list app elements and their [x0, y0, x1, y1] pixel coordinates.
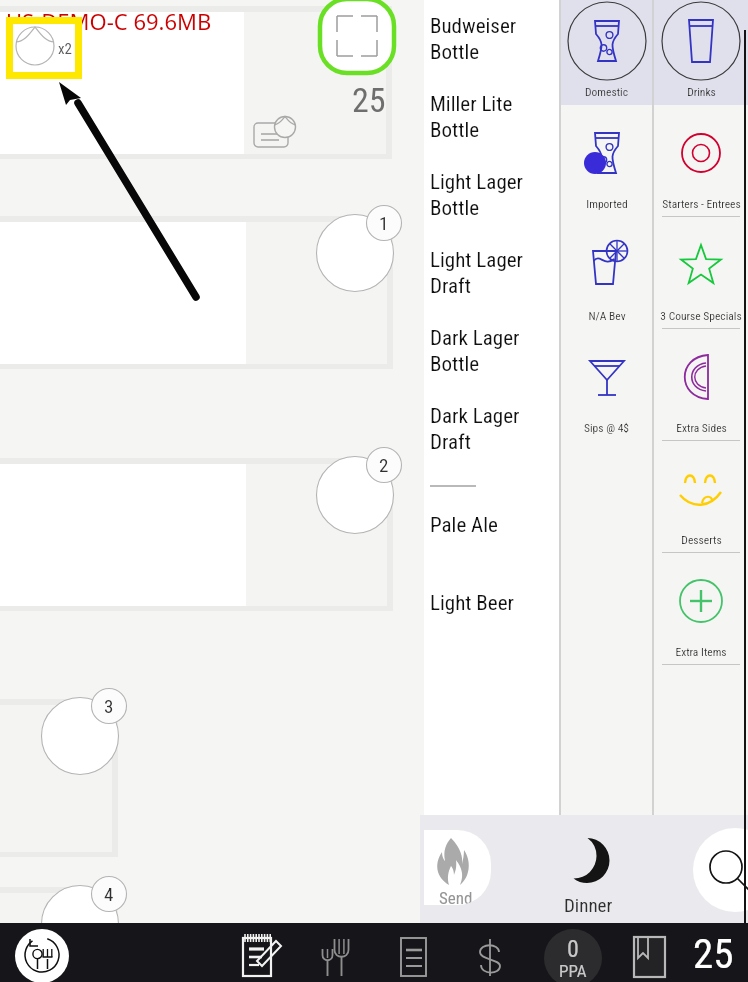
button[interactable]: N/A Bev: [561, 217, 652, 329]
staticText: Imported: [586, 197, 628, 210]
staticText: Miller Lite Bottle: [430, 92, 559, 142]
staticText: Dinner: [564, 894, 613, 916]
staticText: Light Beer: [430, 591, 514, 616]
button[interactable]: 3: [91, 688, 127, 724]
button[interactable]: Payment: [468, 923, 522, 982]
staticText: 2: [379, 454, 389, 476]
button[interactable]: Extra Items: [654, 553, 748, 665]
button[interactable]: Dark Lager Bottle: [424, 326, 559, 404]
staticText: Extra Items: [675, 645, 727, 658]
button[interactable]: 3 Course Specials: [654, 217, 748, 329]
staticText: Budweiser Bottle: [430, 14, 559, 64]
button[interactable]: 25: [680, 923, 740, 982]
button[interactable]: Light Lager Draft: [424, 248, 559, 326]
button[interactable]: Dark Lager Draft: [424, 404, 559, 482]
staticText: 3: [104, 695, 114, 717]
button[interactable]: 2: [366, 447, 402, 483]
button[interactable]: [0, 12, 386, 154]
staticText: Dark Lager Draft: [430, 404, 559, 454]
button[interactable]: Search: [693, 828, 748, 912]
button[interactable]: Bookmark: [620, 923, 674, 982]
button[interactable]: Light Beer: [424, 591, 559, 669]
staticText: PPA: [559, 961, 587, 981]
button[interactable]: Desserts: [654, 441, 748, 553]
button[interactable]: Imported: [561, 105, 652, 217]
staticText: 25: [693, 930, 734, 978]
button[interactable]: Send: [424, 830, 491, 905]
button[interactable]: Courses: [313, 923, 367, 982]
button[interactable]: 0: [544, 929, 602, 982]
button[interactable]: Light Lager Bottle: [424, 170, 559, 248]
staticText: Drinks: [687, 85, 716, 98]
button[interactable]: Starters - Entrees: [654, 105, 748, 217]
button[interactable]: 1: [366, 205, 402, 241]
button[interactable]: [0, 893, 112, 982]
staticText: Sips @ 4$: [584, 421, 629, 434]
staticText: Dark Lager Bottle: [430, 326, 559, 376]
button[interactable]: Pale Ale: [424, 513, 559, 591]
staticText: N/A Bev: [588, 309, 626, 322]
button[interactable]: 4: [91, 876, 127, 912]
staticText: x2: [58, 40, 72, 58]
staticText: 25: [352, 80, 386, 120]
staticText: 1: [379, 212, 389, 234]
button[interactable]: Budweiser Bottle: [424, 14, 559, 92]
staticText: 3 Course Specials: [660, 309, 742, 322]
button[interactable]: [0, 222, 387, 364]
staticText: Light Lager Bottle: [430, 170, 559, 220]
staticText: Desserts: [681, 533, 722, 546]
staticText: Send: [439, 888, 473, 905]
staticText: US-DEMO-C 69.6MB: [6, 6, 212, 36]
button[interactable]: Drinks: [654, 0, 748, 105]
staticText: 4: [104, 883, 114, 905]
staticText: Light Lager Draft: [430, 248, 559, 298]
staticText: 0: [567, 935, 579, 963]
button[interactable]: Extra Sides: [654, 329, 748, 441]
button[interactable]: Receipts: [389, 923, 443, 982]
button[interactable]: Sips @ 4$: [561, 329, 652, 441]
staticText: Domestic: [585, 85, 628, 98]
button[interactable]: Notes: [231, 923, 285, 982]
button[interactable]: Domestic: [561, 0, 652, 105]
button[interactable]: [0, 705, 112, 852]
staticText: Starters - Entrees: [662, 197, 741, 210]
button[interactable]: Dinner: [556, 837, 616, 921]
staticText: Extra Sides: [676, 421, 727, 434]
button[interactable]: Miller Lite Bottle: [424, 92, 559, 170]
staticText: Pale Ale: [430, 513, 498, 538]
button[interactable]: [0, 464, 387, 606]
button[interactable]: Re-order: [15, 929, 69, 982]
